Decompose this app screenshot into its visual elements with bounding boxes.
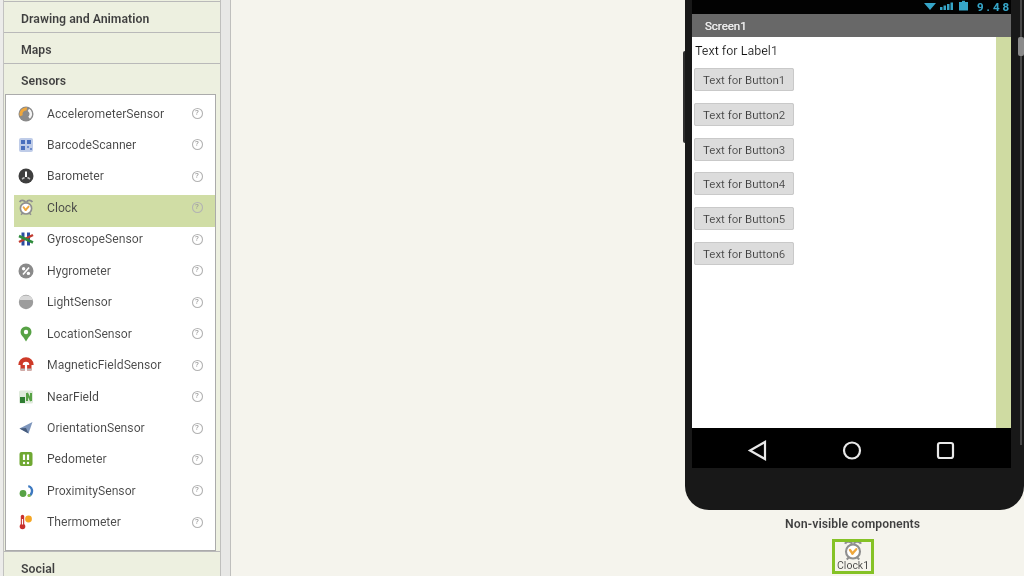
staticText: Thermometer — [47, 515, 121, 529]
staticText: Clock — [47, 201, 78, 215]
button[interactable]: Sensors — [4, 64, 220, 94]
staticText: Barometer — [47, 169, 104, 183]
staticText: AccelerometerSensor — [47, 107, 165, 121]
button[interactable]: Text for Button6 — [694, 242, 794, 265]
button[interactable]: MagneticFieldSensor — [6, 350, 215, 381]
button[interactable]: Maps — [4, 33, 220, 63]
staticText: ? — [195, 517, 199, 526]
button[interactable]: Social — [4, 552, 220, 576]
staticText: Clock1 — [837, 559, 870, 571]
button[interactable]: BarcodeScanner — [6, 130, 215, 161]
staticText: Pedometer — [47, 452, 107, 466]
button[interactable]: OrientationSensor — [6, 413, 215, 444]
staticText: ? — [195, 328, 199, 337]
button[interactable]: Clock1 — [832, 539, 874, 574]
staticText: Maps — [21, 43, 52, 57]
staticText: Non-visible components — [785, 517, 921, 531]
staticText: ? — [195, 297, 199, 306]
button[interactable]: Thermometer — [6, 507, 215, 538]
button[interactable]: Text for Button4 — [694, 172, 794, 195]
button[interactable]: ProximitySensor — [6, 476, 215, 507]
staticText: BarcodeScanner — [47, 138, 137, 152]
button[interactable]: LightSensor — [6, 287, 215, 318]
staticText: Text for Button5 — [703, 212, 786, 225]
button[interactable]: Drawing and Animation — [4, 2, 220, 32]
button[interactable]: Clock — [6, 193, 215, 224]
staticText: Screen1 — [705, 19, 747, 32]
staticText: ? — [195, 202, 199, 211]
staticText: ? — [195, 139, 199, 148]
staticText: Text for Button1 — [703, 73, 786, 86]
staticText: 9.48 — [977, 0, 1013, 13]
staticText: Text for Button3 — [703, 143, 786, 156]
staticText: LightSensor — [47, 295, 112, 309]
staticText: ? — [195, 265, 199, 274]
button[interactable]: GyroscopeSensor — [6, 224, 215, 255]
button[interactable]: Text for Button3 — [694, 138, 794, 161]
button[interactable]: Hygrometer — [6, 256, 215, 287]
button[interactable]: AccelerometerSensor — [6, 99, 215, 130]
staticText: ? — [195, 391, 199, 400]
staticText: Drawing and Animation — [21, 12, 150, 26]
staticText: ? — [195, 454, 199, 463]
staticText: Text for Button2 — [703, 108, 786, 121]
staticText: GyroscopeSensor — [47, 232, 143, 246]
staticText: ? — [195, 423, 199, 432]
staticText: Sensors — [21, 74, 67, 88]
staticText: ? — [195, 360, 199, 369]
button[interactable]: NearField — [6, 382, 215, 413]
staticText: ? — [195, 234, 199, 243]
staticText: LocationSensor — [47, 327, 132, 341]
button[interactable]: Text for Button5 — [694, 207, 794, 230]
button[interactable]: Text for Button2 — [694, 103, 794, 126]
staticText: ? — [195, 171, 199, 180]
staticText: Text for Button4 — [703, 177, 786, 190]
staticText: NearField — [47, 390, 99, 404]
staticText: ? — [195, 485, 199, 494]
staticText: MagneticFieldSensor — [47, 358, 162, 372]
staticText: Text for Label1 — [695, 43, 778, 58]
button[interactable]: Text for Button1 — [694, 68, 794, 91]
button[interactable]: Pedometer — [6, 444, 215, 475]
staticText: Social — [21, 562, 56, 576]
staticText: ProximitySensor — [47, 484, 136, 498]
staticText: Hygrometer — [47, 264, 111, 278]
staticText: OrientationSensor — [47, 421, 145, 435]
button[interactable]: LocationSensor — [6, 319, 215, 350]
staticText: Text for Button6 — [703, 247, 786, 260]
button[interactable]: Barometer — [6, 161, 215, 192]
staticText: ? — [195, 108, 199, 117]
